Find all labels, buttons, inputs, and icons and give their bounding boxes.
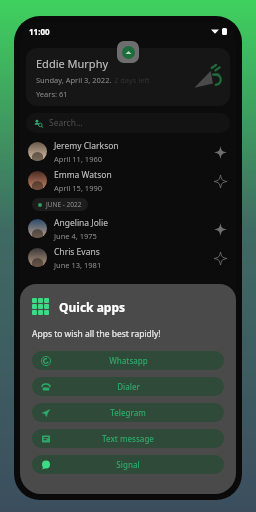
staticText: April 15, 1990 [54, 183, 103, 193]
staticText: Apps to wish all the best rapidly! [32, 328, 161, 340]
staticText: 2 days left [112, 75, 150, 85]
staticText: Eddie Murphy [36, 56, 109, 71]
button[interactable]: Unfavorite [212, 144, 228, 160]
staticText: Text message [102, 433, 154, 444]
button[interactable]: Emma Watson [20, 166, 236, 195]
button[interactable]: Search... [26, 113, 230, 133]
staticText: Chris Evans [54, 246, 100, 258]
staticText: Sunday, April 3, 2022. [36, 75, 112, 85]
staticText: Quick apps [59, 299, 126, 315]
staticText: Signal [116, 459, 140, 470]
button[interactable]: Signal [32, 455, 224, 474]
staticText: June 4, 1975 [54, 231, 97, 241]
button[interactable]: Favorite [212, 250, 228, 266]
button[interactable]: JUNE - 2022 [32, 198, 88, 211]
button[interactable]: Jeremy Clarkson [20, 137, 236, 166]
staticText: Search... [49, 117, 83, 129]
staticText: June 13, 1981 [54, 260, 102, 270]
staticText: Telegram [110, 407, 146, 418]
button[interactable]: Eddie Murphy [26, 48, 230, 106]
button[interactable]: Text message [32, 429, 224, 448]
button[interactable]: Chris Evans [20, 243, 236, 272]
button[interactable]: Unfavorite [212, 221, 228, 237]
staticText: April 11, 1960 [54, 154, 103, 164]
staticText: JUNE - 2022 [46, 200, 82, 209]
staticText: Jeremy Clarkson [54, 140, 119, 152]
button[interactable]: Whatsapp [32, 351, 224, 370]
button[interactable]: Telegram [32, 403, 224, 422]
staticText: Angelina Jolie [54, 217, 108, 229]
staticText: Years: 61 [36, 89, 68, 99]
button[interactable]: Angelina Jolie [20, 214, 236, 243]
staticText: Emma Watson [54, 169, 112, 181]
button[interactable]: Dialer [32, 377, 224, 396]
button[interactable]: Favorite [212, 173, 228, 189]
staticText: Dialer [117, 381, 140, 392]
staticText: 11:00 [29, 26, 50, 37]
staticText: Whatsapp [109, 355, 148, 366]
